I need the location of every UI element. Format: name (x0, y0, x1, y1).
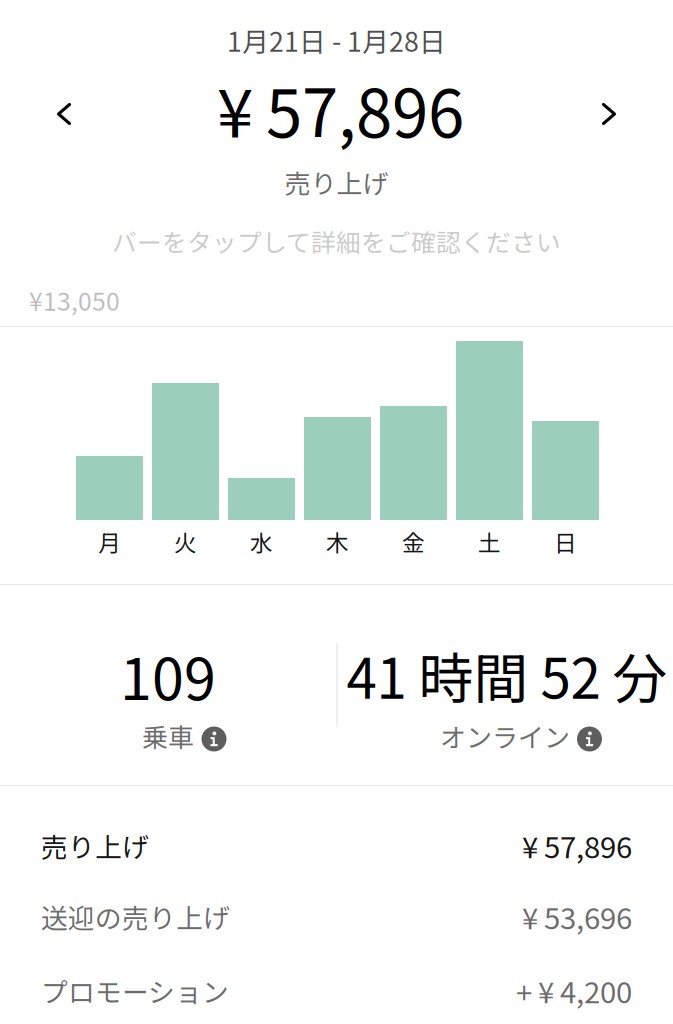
button[interactable]: Previous week (36, 86, 92, 142)
staticText: 乗車 (142, 717, 194, 755)
button[interactable]: プロモーション (0, 954, 673, 1024)
staticText: + ¥ 4,200 (516, 969, 632, 1012)
staticText: オンライン (440, 717, 570, 755)
staticText: 41 時間 52 分 (346, 635, 667, 715)
staticText: 109 (120, 633, 216, 716)
staticText: ¥ 57,896 (522, 824, 632, 867)
staticText: ¥13,050 (29, 282, 120, 318)
staticText: 土 (478, 525, 501, 558)
staticText: 金 (402, 525, 425, 558)
staticText: プロモーション (41, 971, 229, 1010)
staticText: 売り上げ (41, 826, 149, 865)
staticText: バーをタップして詳細をご確認ください (112, 223, 561, 259)
button[interactable]: 売り上げ (0, 809, 673, 881)
staticText: 木 (326, 525, 349, 558)
button[interactable]: 送迎の売り上げ (0, 880, 673, 952)
staticText: 火 (174, 525, 197, 558)
staticText: 1月21日 - 1月28日 (227, 21, 446, 59)
staticText: 日 (554, 525, 577, 558)
staticText: 売り上げ (284, 163, 388, 201)
button[interactable]: Next week (581, 86, 637, 142)
staticText: 月 (98, 525, 121, 558)
staticText: 送迎の売り上げ (41, 897, 230, 936)
staticText: 水 (250, 525, 273, 558)
staticText: ¥ 53,696 (522, 895, 632, 938)
staticText: ¥ 57,896 (217, 62, 464, 156)
